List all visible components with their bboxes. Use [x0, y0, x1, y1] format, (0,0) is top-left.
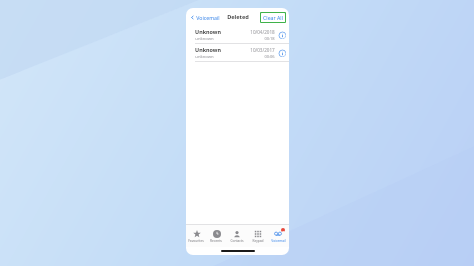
staticText: unknown [195, 36, 214, 42]
staticText: Voicemail [196, 14, 220, 21]
staticText: 10/04/2018 [250, 29, 275, 35]
staticText: Clear All [263, 14, 283, 21]
staticText: Favourites [188, 239, 204, 243]
staticText: Keypad [252, 239, 264, 243]
button[interactable]: Favourites [186, 225, 206, 247]
button[interactable]: Recents [206, 225, 226, 247]
button[interactable]: More info [278, 49, 286, 57]
staticText: 25 [282, 229, 285, 232]
staticText: 00:06 [264, 54, 275, 59]
button[interactable]: Keypad [247, 225, 268, 247]
staticText: Voicemail [271, 239, 286, 243]
staticText: Unknown [195, 28, 221, 35]
staticText: Recents [210, 239, 222, 243]
button[interactable]: More info [278, 31, 286, 39]
staticText: Contacts [230, 239, 244, 243]
staticText: Deleted [227, 13, 249, 21]
button[interactable]: Clear All [261, 13, 285, 22]
button[interactable]: Unknown [186, 26, 289, 43]
staticText: 00:18 [264, 36, 275, 41]
staticText: 10/03/2017 [250, 47, 275, 53]
button[interactable]: Contacts [226, 225, 247, 247]
button[interactable]: 25 [268, 225, 289, 247]
staticText: unknown [195, 54, 214, 60]
button[interactable]: Voicemail [189, 12, 221, 23]
button[interactable]: Unknown [186, 44, 289, 61]
staticText: Unknown [195, 46, 221, 53]
